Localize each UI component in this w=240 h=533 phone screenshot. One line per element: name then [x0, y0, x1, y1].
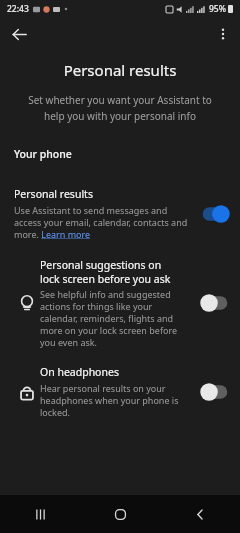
staticText: Use Assistant to send messages and acces… [14, 204, 190, 240]
staticText: Personal results [14, 187, 93, 201]
button[interactable]: Back [160, 495, 240, 533]
staticText: On headphones [40, 365, 119, 379]
button[interactable]: More options [211, 22, 235, 46]
staticText: Personal results [0, 60, 240, 80]
staticText: 95% [209, 3, 226, 15]
staticText: Your phone [14, 147, 72, 161]
button[interactable]: Personal suggestions toggle [198, 290, 232, 316]
staticText: Set whether you want your Assistant to h… [12, 93, 228, 122]
button[interactable]: Recent apps [0, 495, 80, 533]
button[interactable]: Personal suggestions on lock screen befo… [0, 258, 240, 348]
button[interactable]: Back [6, 21, 32, 47]
button[interactable]: Personal results [0, 187, 240, 240]
button[interactable]: Personal results toggle [198, 201, 232, 227]
staticText: Personal suggestions on lock screen befo… [40, 258, 171, 286]
button[interactable]: On headphones toggle [198, 379, 232, 405]
staticText: Hear personal results on your headphones… [40, 382, 190, 418]
button[interactable]: Home [80, 495, 160, 533]
staticText: See helpful info and suggested actions f… [40, 288, 190, 348]
button[interactable]: On headphones [0, 365, 240, 418]
staticText: 22:43 [7, 3, 29, 15]
